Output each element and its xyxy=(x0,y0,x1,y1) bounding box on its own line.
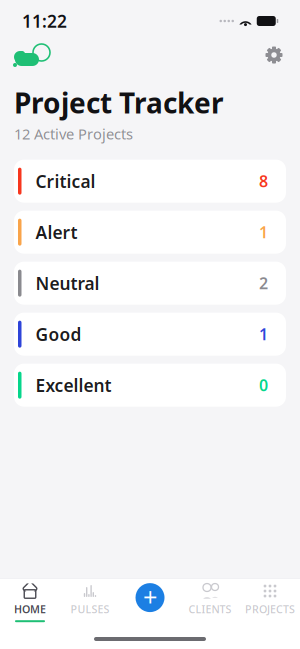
staticText: 2 xyxy=(259,272,268,294)
staticText: PROJECTS xyxy=(245,602,295,616)
staticText: CLIENTS xyxy=(188,602,231,616)
button[interactable]: PULSES xyxy=(60,581,120,625)
button[interactable]: Good xyxy=(14,313,286,356)
staticText: Critical xyxy=(35,170,95,193)
staticText: Excellent xyxy=(35,374,111,397)
staticText: Good xyxy=(35,323,81,346)
staticText: 8 xyxy=(259,170,268,192)
button[interactable]: Critical xyxy=(14,160,286,203)
staticText: + xyxy=(143,580,157,613)
button[interactable]: Neutral xyxy=(14,262,286,305)
button[interactable]: Excellent xyxy=(14,364,286,407)
staticText: 12 Active Projects xyxy=(14,124,133,144)
button[interactable]: Settings xyxy=(259,40,289,70)
button[interactable]: CLIENTS xyxy=(180,581,240,625)
staticText: Neutral xyxy=(35,272,99,295)
staticText: 11:22 xyxy=(22,9,67,32)
staticText: Project Tracker xyxy=(14,84,224,121)
staticText: 0 xyxy=(259,374,268,396)
staticText: 1 xyxy=(259,221,268,243)
button[interactable]: HOME xyxy=(0,581,60,625)
staticText: Alert xyxy=(35,221,77,244)
button[interactable]: Add xyxy=(128,576,172,620)
button[interactable]: Alert xyxy=(14,211,286,254)
staticText: HOME xyxy=(14,602,46,616)
staticText: 1 xyxy=(259,323,268,345)
staticText: PULSES xyxy=(70,602,109,616)
button[interactable]: PROJECTS xyxy=(240,581,300,625)
